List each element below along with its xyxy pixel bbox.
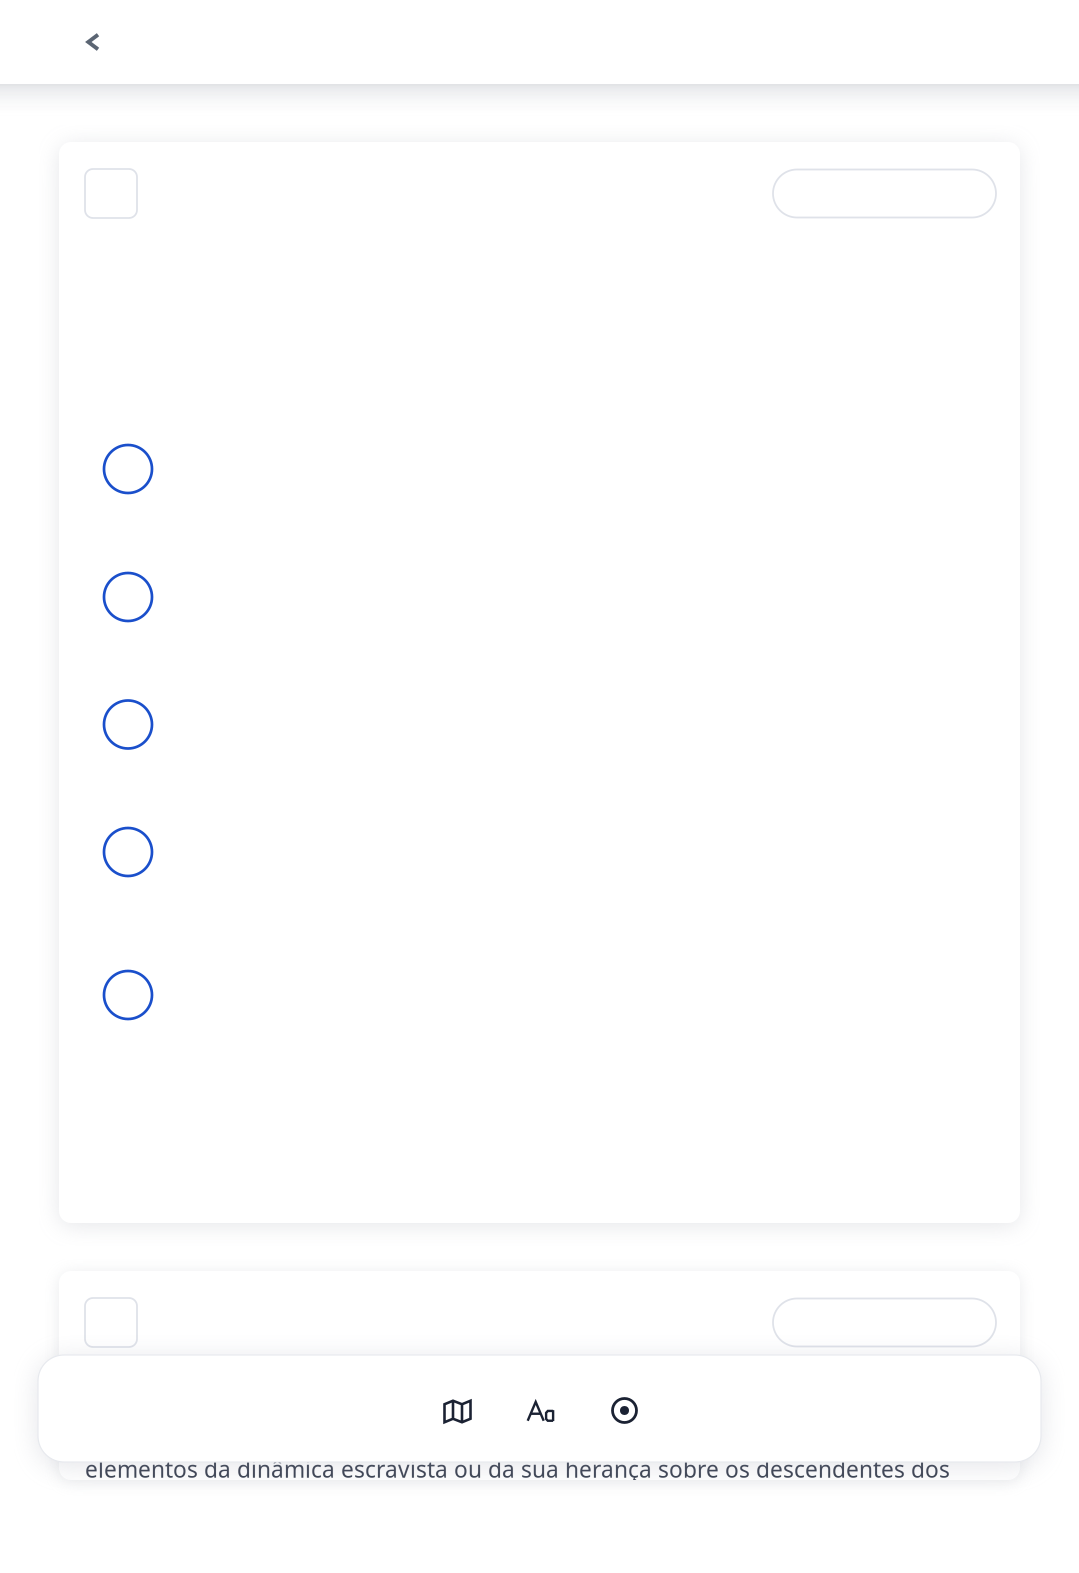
button[interactable]: Back [55, 0, 131, 84]
staticText: elementos da dinâmica escravista ou da s… [85, 1454, 950, 1484]
button[interactable]: Appearance [582, 1355, 668, 1462]
button[interactable]: Contents [410, 1355, 496, 1462]
button[interactable]: Text size [496, 1355, 582, 1462]
